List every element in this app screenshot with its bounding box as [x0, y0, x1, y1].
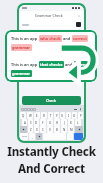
button[interactable]: H — [54, 119, 60, 126]
button[interactable]: E — [34, 112, 40, 119]
staticText: T — [50, 114, 52, 118]
staticText: And Correct — [18, 161, 85, 177]
button[interactable]: M — [68, 126, 74, 133]
button[interactable]: P — [78, 112, 83, 119]
button[interactable]: Tool 1 — [24, 108, 27, 111]
button[interactable]: , — [29, 133, 35, 140]
button[interactable]: F — [40, 119, 46, 126]
button[interactable]: D — [34, 119, 39, 126]
staticText: Check — [46, 98, 57, 103]
button[interactable]: U — [60, 112, 65, 119]
button[interactable]: K — [68, 119, 74, 126]
staticText: Y — [56, 114, 58, 118]
staticText: E — [36, 114, 38, 118]
button[interactable]: . — [67, 133, 73, 140]
button[interactable]: More options — [77, 14, 81, 18]
staticText: S — [30, 121, 32, 125]
staticText: correct — [75, 62, 89, 67]
staticText: A — [24, 121, 26, 125]
staticText: J — [64, 121, 65, 125]
staticText: R — [43, 114, 45, 118]
button[interactable]: Tool 4 — [33, 108, 36, 111]
staticText: This is an app — [11, 62, 39, 67]
staticText: F — [42, 121, 44, 125]
staticText: and — [64, 62, 74, 67]
button[interactable]: J — [61, 119, 67, 126]
button[interactable]: I — [66, 112, 71, 119]
staticText: X — [36, 128, 38, 132]
staticText: D — [35, 121, 38, 125]
staticText: I — [68, 114, 70, 118]
staticText: grammar — [12, 71, 31, 76]
button[interactable]: A — [22, 119, 27, 126]
button[interactable]: B — [54, 126, 60, 133]
staticText: M — [70, 128, 73, 132]
button[interactable]: L — [75, 119, 81, 126]
staticText: Instantly Check — [7, 144, 96, 160]
staticText: L — [77, 121, 79, 125]
staticText: U — [61, 114, 64, 118]
staticText: that checks — [40, 62, 63, 67]
button[interactable]: Z — [28, 126, 33, 133]
button[interactable]: N — [61, 126, 67, 133]
button[interactable]: T — [48, 112, 53, 119]
staticText: V — [49, 128, 51, 132]
button[interactable]: Enter — [74, 133, 83, 140]
staticText: K — [70, 121, 72, 125]
button[interactable]: G — [47, 119, 53, 126]
staticText: P — [80, 114, 82, 118]
staticText: B — [56, 128, 58, 132]
button[interactable]: V — [47, 126, 53, 133]
staticText: Grammar Check — [35, 13, 63, 18]
button[interactable]: Tool 3 — [30, 108, 33, 111]
button[interactable]: Backspace — [75, 126, 83, 133]
button[interactable]: ?123 — [20, 133, 28, 140]
staticText: ?123 — [22, 135, 27, 138]
staticText: Z — [30, 128, 32, 132]
button[interactable]: Y — [54, 112, 59, 119]
staticText: N — [63, 128, 66, 132]
button[interactable]: X — [34, 126, 39, 133]
staticText: C — [42, 128, 44, 132]
button[interactable]: R — [41, 112, 47, 119]
button[interactable]: Q — [20, 112, 26, 119]
button[interactable]: Shift — [20, 126, 27, 133]
button[interactable]: Tool 0 — [21, 108, 24, 111]
other: Clear — [76, 22, 81, 27]
staticText: H — [56, 121, 59, 125]
staticText: grammar — [12, 45, 31, 50]
staticText: who check — [40, 36, 61, 41]
button[interactable]: Tool 2 — [27, 108, 30, 111]
button[interactable]: W — [27, 112, 33, 119]
staticText: G — [49, 121, 52, 125]
staticText: O — [73, 114, 76, 118]
button[interactable]: S — [28, 119, 33, 126]
staticText: This is an app — [11, 36, 39, 41]
button[interactable]: Emoji — [36, 133, 42, 140]
staticText: and — [62, 36, 72, 41]
button[interactable]: Clear — [22, 20, 81, 29]
staticText: Q — [22, 114, 25, 118]
staticText: . — [70, 135, 71, 139]
button[interactable]: O — [72, 112, 77, 119]
button[interactable]: Check — [22, 96, 81, 105]
staticText: correct — [73, 36, 87, 41]
staticText: , — [32, 135, 33, 139]
button[interactable]: Voice input — [79, 108, 82, 111]
button[interactable]: C — [40, 126, 46, 133]
staticText: W — [29, 114, 32, 118]
